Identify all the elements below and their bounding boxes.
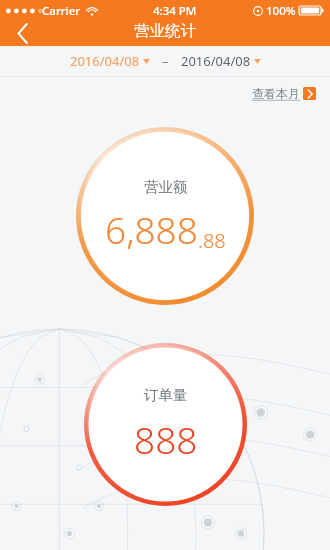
staticText: 888: [134, 414, 198, 464]
staticText: 4:34 PM: [153, 3, 197, 19]
staticText: 营业统计: [134, 21, 196, 41]
staticText: .88: [198, 227, 226, 254]
button[interactable]: 查看本月: [248, 81, 320, 106]
staticText: 订单量: [144, 386, 188, 404]
staticText: 100%: [266, 3, 296, 19]
button[interactable]: 订单量: [83, 342, 248, 507]
button[interactable]: Back: [0, 20, 46, 46]
button[interactable]: 2016/04/08: [179, 49, 263, 73]
staticText: 查看本月: [252, 86, 300, 101]
button[interactable]: 营业额: [75, 126, 255, 306]
staticText: 2016/04/08: [181, 52, 251, 70]
staticText: 营业额: [144, 178, 188, 196]
staticText: –: [162, 52, 169, 70]
staticText: Carrier: [42, 3, 81, 19]
button[interactable]: 2016/04/08: [68, 49, 152, 73]
staticText: 6,888: [105, 204, 198, 254]
staticText: 2016/04/08: [70, 52, 140, 70]
